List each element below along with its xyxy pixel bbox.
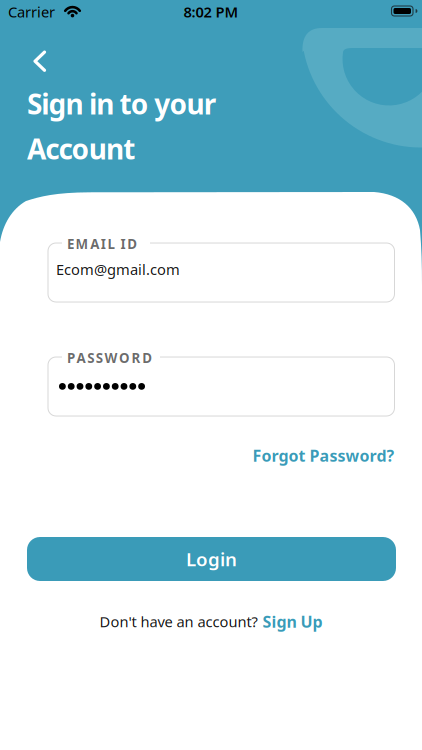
staticText: 8:02 PM: [183, 2, 238, 21]
button[interactable]: Login: [27, 537, 396, 581]
staticText: EMAIL ID: [67, 235, 137, 253]
staticText: Forgot Password?: [252, 445, 394, 466]
staticText: Ecom@gmail.com: [56, 259, 180, 279]
button[interactable]: Back: [18, 39, 62, 83]
staticText: Carrier: [8, 2, 55, 21]
staticText: Account: [27, 130, 135, 167]
staticText: Login: [186, 547, 237, 571]
staticText: Sign Up: [262, 611, 322, 632]
staticText: PASSWORD: [67, 349, 152, 367]
button[interactable]: Don't have an account?: [99, 611, 322, 632]
staticText: Don't have an account?: [99, 612, 257, 631]
button[interactable]: Forgot Password?: [252, 445, 394, 466]
staticText: Sign in to your: [27, 85, 217, 122]
